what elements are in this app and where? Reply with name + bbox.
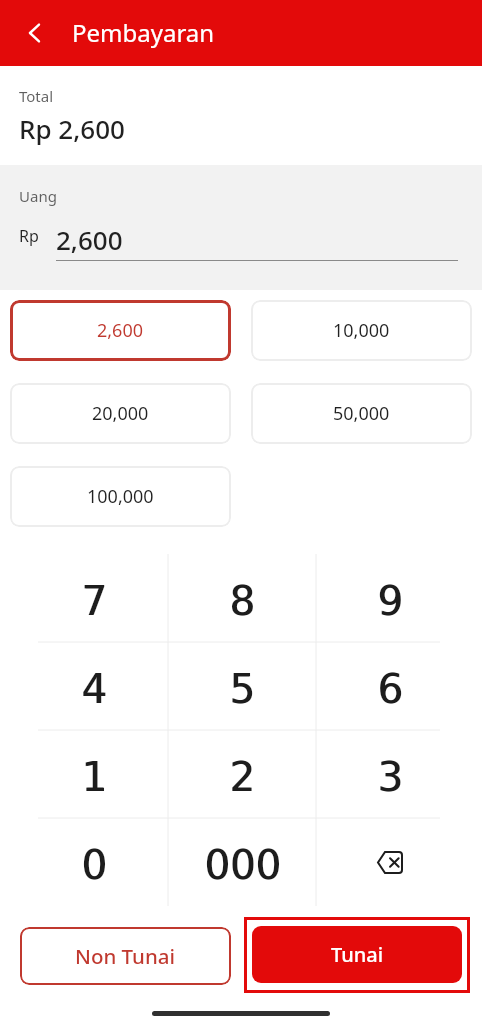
button[interactable]: 7 [20,554,168,642]
staticText: 6 [377,666,403,713]
button[interactable]: 10,000 [251,300,472,361]
button[interactable]: 100,000 [10,466,231,527]
staticText: 000 [205,842,282,889]
button[interactable]: Non Tunai [20,927,231,985]
staticText: 0 [82,842,108,889]
button[interactable]: 4 [20,642,168,730]
staticText: Rp [19,225,39,247]
staticText: 2 [229,754,255,801]
staticText: Non Tunai [75,942,176,970]
staticText: 5 [230,666,256,713]
staticText: 9 [377,578,403,625]
staticText: Tunai [331,941,384,968]
button[interactable]: Tunai [244,917,470,993]
staticText: 7 [82,578,108,625]
button[interactable]: 2,600 [10,300,231,361]
staticText: 3 [377,754,403,801]
button[interactable]: 0 [20,818,168,906]
staticText: 7 [81,578,107,625]
staticText: Total [19,86,54,106]
button[interactable]: 50,000 [251,383,472,444]
staticText: 1 [82,754,108,801]
staticText: 6 [378,666,404,713]
staticText: 2 [230,754,256,801]
staticText: 2,600 [56,222,123,257]
other: Backspace [368,840,412,884]
button[interactable]: 000 [168,818,316,906]
button[interactable]: 6 [316,642,464,730]
staticText: 8 [229,578,255,625]
staticText: 1 [81,754,107,801]
staticText: 100,000 [87,484,154,509]
button[interactable]: 5 [168,642,316,730]
staticText: 9 [378,578,404,625]
button[interactable]: Backspace [316,818,464,906]
staticText: 2,600 [97,318,144,343]
button[interactable]: 20,000 [10,383,231,444]
staticText: 0 [81,842,107,889]
button[interactable]: Back [16,15,52,51]
staticText: 4 [82,666,108,713]
staticText: Uang [19,186,57,206]
staticText: 10,000 [333,318,390,343]
staticText: 8 [230,578,256,625]
staticText: Pembayaran [72,16,215,49]
staticText: 5 [229,666,255,713]
staticText: Rp 2,600 [19,111,125,146]
staticText: 20,000 [92,401,149,426]
staticText: 3 [378,754,404,801]
button[interactable]: 1 [20,730,168,818]
staticText: 50,000 [333,401,390,426]
button[interactable]: 8 [168,554,316,642]
button[interactable]: 9 [316,554,464,642]
staticText: 4 [81,666,107,713]
staticText: 000 [204,842,281,889]
button[interactable]: 2 [168,730,316,818]
button[interactable]: 3 [316,730,464,818]
